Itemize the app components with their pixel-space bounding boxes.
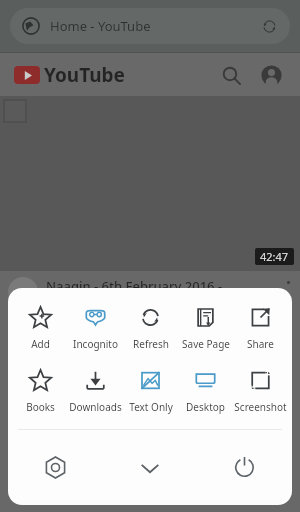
button[interactable]: Incognito bbox=[68, 302, 123, 355]
staticText: Incognito bbox=[73, 337, 118, 351]
button[interactable]: Books bbox=[12, 365, 68, 418]
button[interactable]: Share bbox=[233, 302, 288, 355]
staticText: Share bbox=[247, 337, 274, 351]
button[interactable]: Text Only bbox=[123, 365, 178, 418]
staticText: Add bbox=[31, 337, 50, 351]
button[interactable]: Home - YouTube bbox=[10, 8, 290, 44]
button[interactable]: Exit bbox=[197, 430, 292, 505]
staticText: Desktop bbox=[186, 400, 225, 414]
button[interactable]: Settings bbox=[8, 430, 102, 505]
button[interactable]: Collapse bbox=[102, 430, 197, 505]
button[interactable]: Search bbox=[216, 60, 246, 90]
staticText: Downloads bbox=[69, 400, 122, 414]
staticText: Refresh bbox=[133, 337, 169, 351]
button[interactable]: Add bbox=[12, 302, 68, 355]
staticText: Books bbox=[26, 400, 55, 414]
staticText: 42:47 bbox=[260, 249, 289, 264]
button[interactable]: Downloads bbox=[68, 365, 123, 418]
staticText: Text Only bbox=[129, 400, 173, 414]
button[interactable]: Refresh bbox=[123, 302, 178, 355]
staticText: Save Page bbox=[182, 337, 230, 351]
button[interactable]: Account bbox=[256, 60, 286, 90]
staticText: Screenshot bbox=[234, 400, 287, 414]
button[interactable]: Screenshot bbox=[233, 365, 288, 418]
staticText: Home - YouTube bbox=[50, 17, 151, 35]
button[interactable]: Save Page bbox=[178, 302, 233, 355]
staticText: Naagin - 6th February 2016 - bbox=[46, 277, 223, 295]
staticText: YouTube bbox=[44, 62, 125, 88]
button[interactable]: Desktop bbox=[178, 365, 233, 418]
